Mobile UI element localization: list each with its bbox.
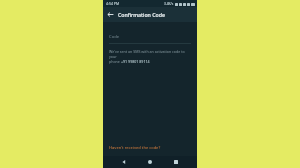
- staticText: Code: [109, 34, 120, 40]
- button[interactable]: Home: [145, 157, 155, 167]
- button[interactable]: Back: [119, 157, 129, 167]
- staticText: +91 99801 89114: [121, 59, 150, 64]
- button[interactable]: Back: [103, 7, 118, 22]
- staticText: We've sent an SMS with an activation cod…: [109, 49, 191, 59]
- staticText: phone: [109, 59, 121, 64]
- staticText: Confirmation Code: [118, 11, 165, 18]
- button[interactable]: Recent apps: [171, 157, 181, 167]
- staticText: Haven't received the code?: [109, 145, 161, 150]
- staticText: 3.4K/s: [164, 2, 174, 6]
- button[interactable]: Haven't received the code?: [109, 145, 191, 150]
- staticText: 4:54 PM: [106, 1, 120, 6]
